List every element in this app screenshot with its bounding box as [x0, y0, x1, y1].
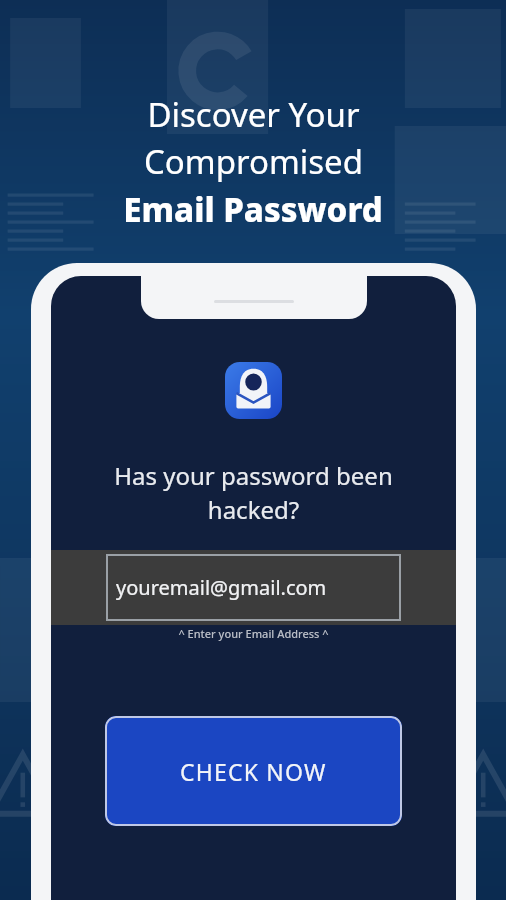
other: App icon — [225, 362, 282, 419]
staticText: Discover Your — [147, 92, 360, 137]
staticText: youremail@gmail.com — [116, 574, 327, 601]
staticText: ^ Enter your Email Address ^ — [178, 626, 329, 641]
staticText: Compromised — [144, 139, 363, 184]
staticText: Has your password been hacked? — [59, 459, 448, 526]
button[interactable]: CHECK NOW — [105, 716, 402, 826]
staticText: CHECK NOW — [180, 756, 327, 787]
button[interactable]: youremail@gmail.com — [106, 554, 401, 621]
staticText: Email Password — [123, 187, 383, 232]
